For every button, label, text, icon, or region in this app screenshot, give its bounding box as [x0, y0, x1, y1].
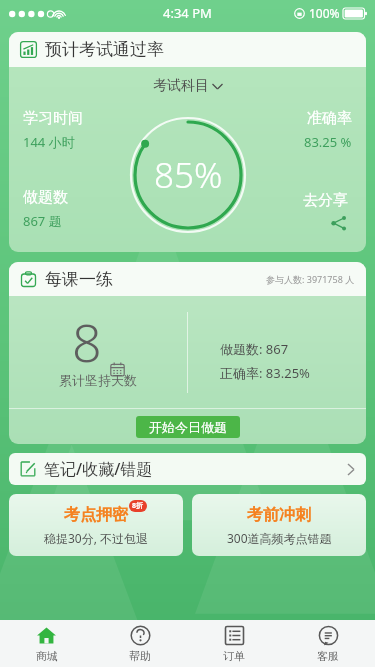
staticText: 8折 — [132, 501, 144, 511]
staticText: 83.25 % — [304, 133, 352, 151]
staticText: 订单 — [223, 649, 245, 663]
staticText: 正确率: 83.25% — [220, 364, 310, 382]
staticText: 学习时间 — [23, 109, 83, 128]
button[interactable]: 商城 — [0, 620, 93, 667]
staticText: 客服 — [317, 649, 339, 663]
staticText: 稳提30分, 不过包退 — [44, 530, 149, 546]
button[interactable]: 帮助 — [93, 620, 187, 667]
staticText: 4:34 PM — [163, 4, 212, 22]
staticText: 商城 — [36, 649, 58, 663]
staticText: 300道高频考点错题 — [227, 530, 332, 546]
button[interactable]: 考试科目 — [147, 75, 229, 97]
staticText: 做题数 — [23, 188, 68, 207]
staticText: 85% — [154, 151, 223, 199]
staticText: 准确率 — [307, 109, 352, 128]
button[interactable]: 去分享 — [299, 187, 352, 236]
staticText: 做题数: 867 — [220, 340, 289, 358]
button[interactable]: 开始今日做题 — [136, 416, 240, 438]
button[interactable]: 订单 — [187, 620, 281, 667]
staticText: 每课一练 — [45, 269, 113, 290]
staticText: 笔记/收藏/错题 — [44, 458, 153, 480]
staticText: 867 题 — [23, 212, 62, 230]
staticText: 累计坚持天数 — [59, 372, 137, 388]
button[interactable]: 考前冲刺 — [192, 494, 366, 556]
staticText: 144 小时 — [23, 133, 75, 151]
staticText: 去分享 — [303, 191, 348, 210]
button[interactable]: 笔记/收藏/错题 — [9, 453, 366, 485]
staticText: 100% — [309, 5, 340, 21]
staticText: 开始今日做题 — [149, 419, 227, 435]
staticText: 参与人数: 3971758 人 — [266, 273, 355, 285]
staticText: 预计考试通过率 — [45, 39, 164, 60]
staticText: 8 — [72, 306, 102, 377]
staticText: 帮助 — [129, 649, 151, 663]
button[interactable]: 考点押密 — [9, 494, 183, 556]
staticText: 考点押密 — [64, 505, 128, 525]
button[interactable]: 客服 — [281, 620, 375, 667]
staticText: 考试科目 — [153, 77, 209, 95]
staticText: 考前冲刺 — [247, 505, 311, 525]
